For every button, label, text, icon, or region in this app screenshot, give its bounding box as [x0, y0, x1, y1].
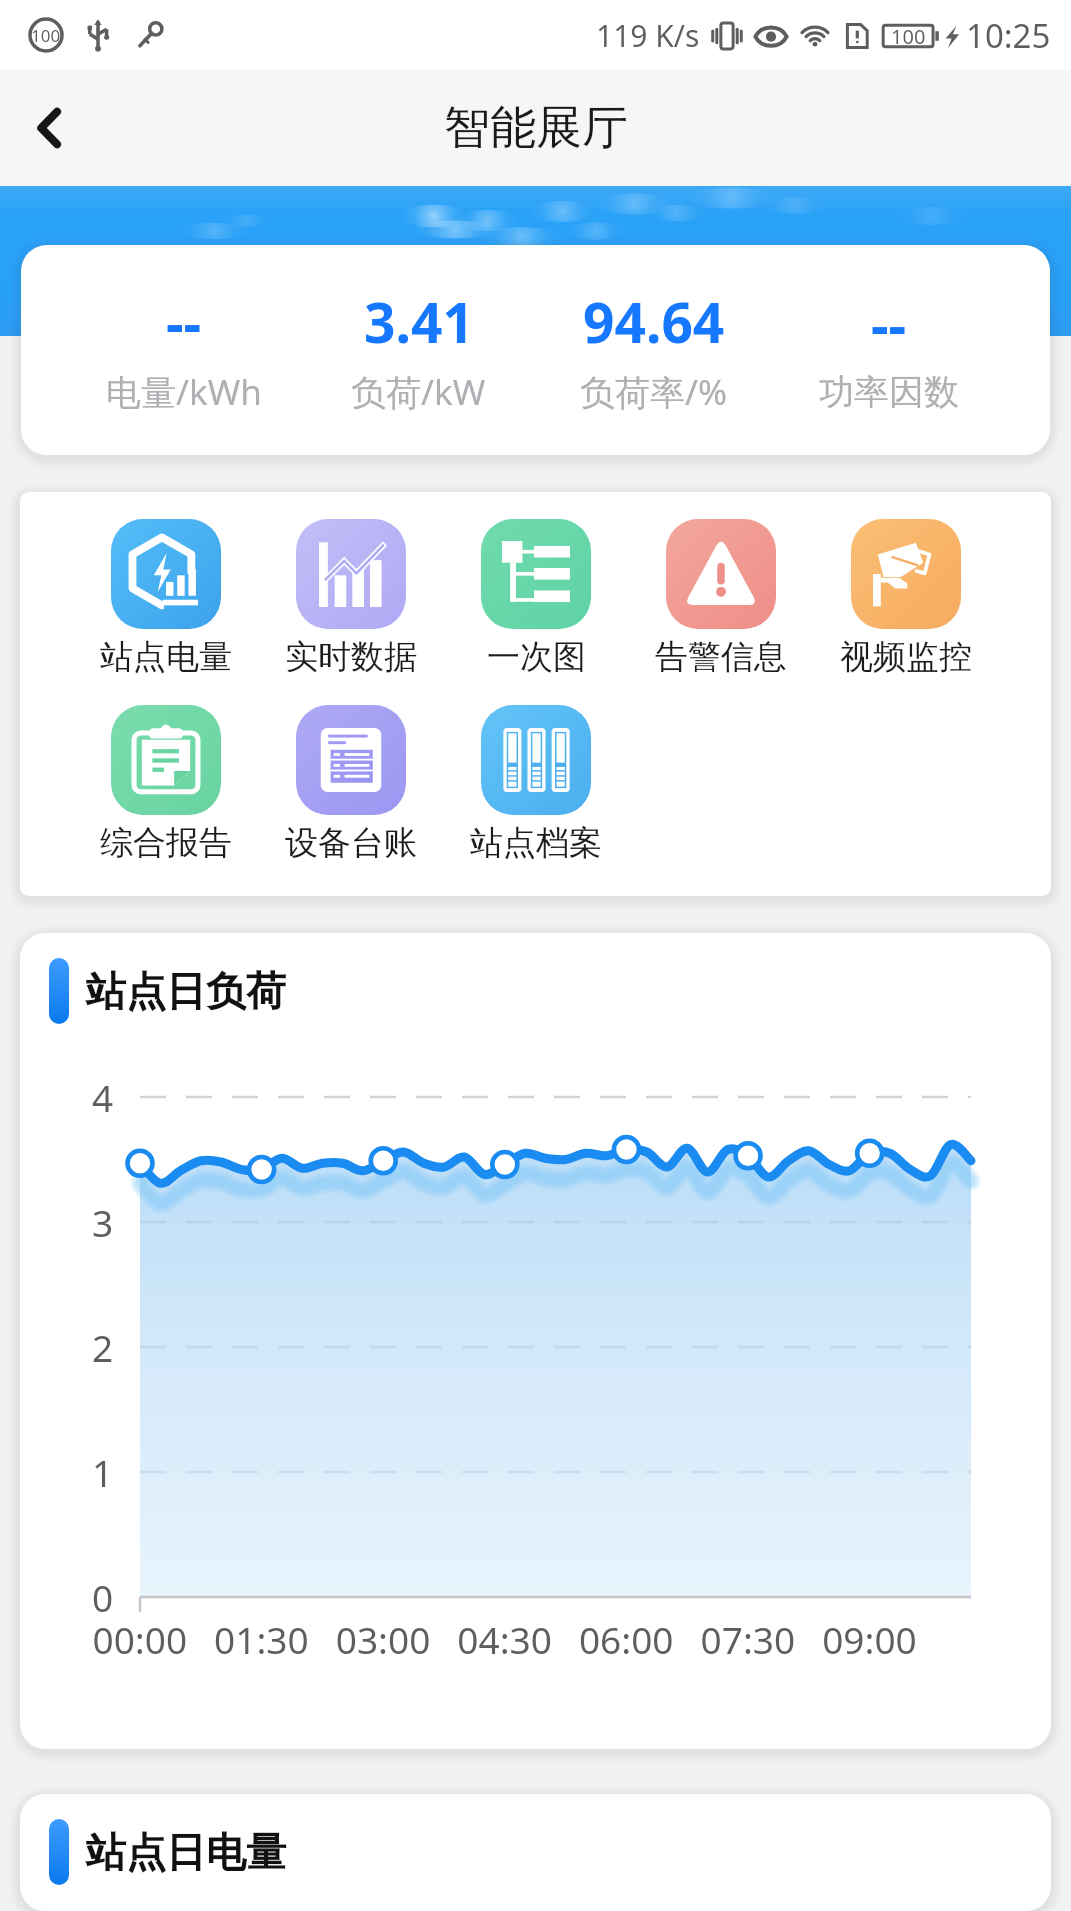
staticText: 智能展厅: [444, 99, 628, 157]
button[interactable]: Back: [0, 78, 100, 178]
button[interactable]: --: [21, 245, 1050, 455]
staticText: 119 K/s: [596, 15, 700, 56]
staticText: 实时数据: [285, 636, 417, 678]
staticText: --: [871, 286, 907, 361]
button[interactable]: 实时数据: [285, 519, 417, 678]
button[interactable]: 综合报告: [100, 705, 232, 864]
staticText: 电量/kWh: [106, 368, 262, 416]
staticText: 负荷/kW: [351, 368, 486, 416]
staticText: 站点日电量: [86, 1827, 286, 1877]
staticText: 站点档案: [470, 822, 602, 864]
staticText: 站点日负荷: [86, 966, 286, 1016]
staticText: 告警信息: [655, 636, 787, 678]
button[interactable]: 告警信息: [655, 519, 787, 678]
staticText: 视频监控: [840, 636, 972, 678]
staticText: 站点电量: [100, 636, 232, 678]
staticText: 功率因数: [819, 370, 959, 414]
staticText: 综合报告: [100, 822, 232, 864]
staticText: 94.64: [583, 284, 725, 359]
staticText: 设备台账: [285, 822, 417, 864]
button[interactable]: 视频监控: [840, 519, 972, 678]
staticText: 100: [31, 24, 61, 47]
staticText: --: [166, 284, 202, 359]
button[interactable]: 设备台账: [285, 705, 417, 864]
staticText: 负荷率/%: [580, 368, 728, 416]
staticText: 3.41: [364, 284, 474, 359]
staticText: 一次图: [487, 636, 586, 678]
button[interactable]: 站点档案: [470, 705, 602, 864]
button[interactable]: 站点电量: [100, 519, 232, 678]
staticText: 100: [891, 23, 926, 50]
button[interactable]: 一次图: [481, 519, 591, 678]
staticText: 10:25: [966, 13, 1051, 58]
